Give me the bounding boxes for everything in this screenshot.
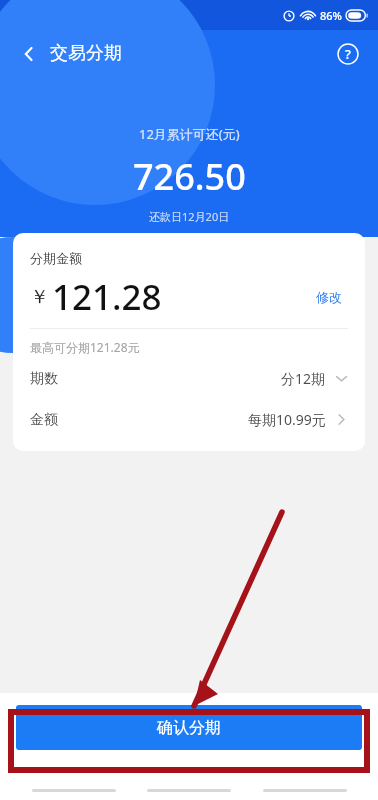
staticText: 还款日12月20日 <box>149 209 230 224</box>
button[interactable]: Back <box>14 39 44 69</box>
staticText: 分12期 <box>281 369 326 388</box>
staticText: 每期10.99元 <box>248 410 326 429</box>
staticText: ? <box>345 45 351 63</box>
staticText: 金额 <box>30 411 58 429</box>
staticText: ￥ <box>30 285 49 309</box>
staticText: 确认分期 <box>157 718 221 738</box>
staticText: 121.28 <box>52 273 162 321</box>
staticText: 期数 <box>30 370 58 388</box>
button[interactable]: 确认分期 <box>16 705 362 750</box>
staticText: 726.50 <box>133 152 246 201</box>
button[interactable]: Help <box>332 38 364 70</box>
button[interactable]: 修改 <box>310 283 348 311</box>
staticText: 86% <box>320 8 342 23</box>
button[interactable]: 金额 <box>30 410 348 429</box>
staticText: 12月累计可还(元) <box>139 125 240 143</box>
button[interactable]: 期数 <box>30 369 348 388</box>
staticText: 最高可分期121.28元 <box>30 339 140 355</box>
staticText: 修改 <box>316 289 342 305</box>
staticText: 分期金额 <box>30 250 82 266</box>
staticText: 交易分期 <box>50 42 122 65</box>
